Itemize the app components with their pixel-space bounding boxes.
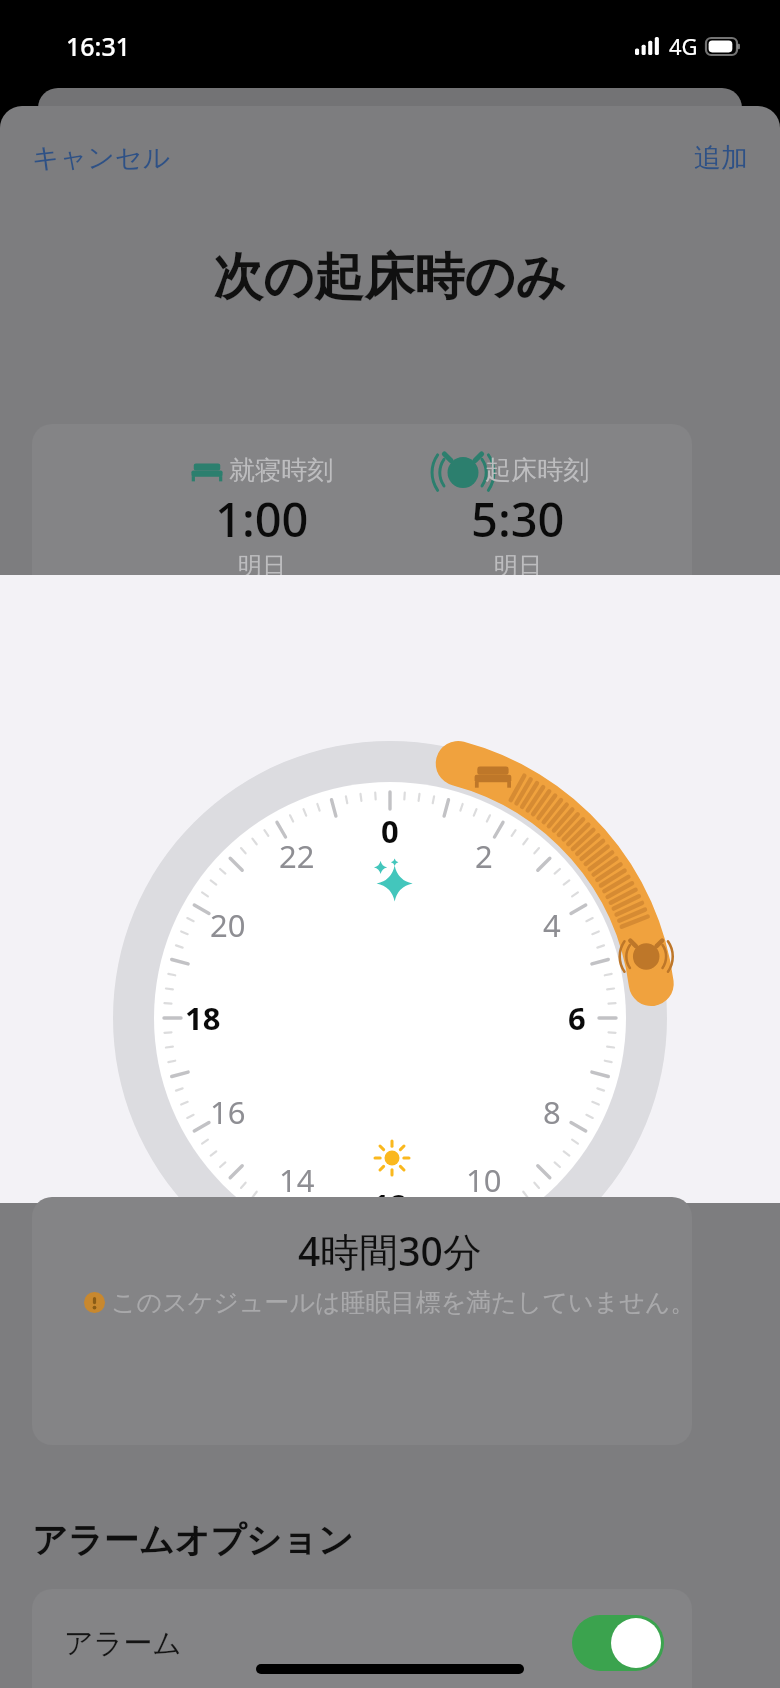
- staticText: 追加: [694, 141, 748, 175]
- staticText: 12: [372, 1184, 408, 1226]
- staticText: 4G: [669, 31, 698, 61]
- staticText: このスケジュールは睡眠目標を満たしていません。: [111, 1287, 696, 1318]
- staticText: 20: [210, 904, 246, 946]
- staticText: 0: [381, 810, 399, 852]
- staticText: 明日: [238, 551, 286, 581]
- staticText: 2: [475, 835, 493, 877]
- staticText: 14: [279, 1159, 315, 1201]
- staticText: 6: [568, 997, 586, 1039]
- staticText: 4: [543, 904, 561, 946]
- staticText: 明日: [494, 551, 542, 581]
- staticText: 18: [185, 997, 221, 1039]
- staticText: アラームオプション: [32, 1518, 354, 1562]
- button[interactable]: アラーム: [32, 1589, 692, 1688]
- staticText: 8: [543, 1091, 561, 1133]
- staticText: 1:00: [215, 487, 309, 551]
- staticText: キャンセル: [32, 141, 171, 175]
- staticText: 22: [279, 835, 315, 877]
- staticText: 就寝時刻: [229, 454, 333, 487]
- button[interactable]: アラーム: [572, 1615, 664, 1671]
- staticText: 次の起床時のみ: [213, 246, 567, 309]
- button[interactable]: 追加: [662, 125, 780, 191]
- staticText: 16:31: [66, 29, 131, 63]
- staticText: 5:30: [471, 487, 565, 551]
- button[interactable]: キャンセル: [0, 125, 203, 191]
- staticText: 起床時刻: [485, 454, 589, 487]
- staticText: 4時間30分: [298, 1224, 482, 1277]
- staticText: 16: [210, 1091, 246, 1133]
- staticText: アラーム: [64, 1625, 183, 1662]
- staticText: 10: [466, 1159, 502, 1201]
